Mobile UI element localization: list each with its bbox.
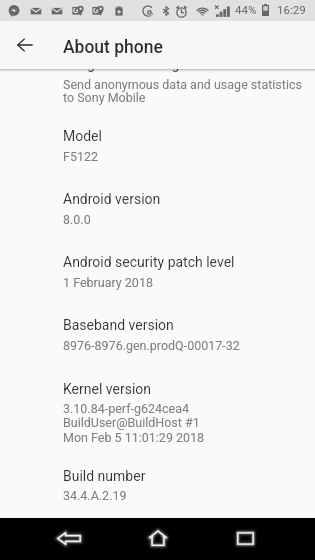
staticText: Send anonymous data and usage statistics bbox=[63, 77, 302, 92]
button[interactable]: Recent apps bbox=[215, 518, 275, 560]
staticText: to Sony Mobile bbox=[63, 90, 146, 105]
staticText: Usage info sharing bbox=[63, 56, 180, 72]
button[interactable] bbox=[0, 367, 315, 439]
staticText: Baseband version bbox=[63, 317, 174, 333]
staticText: Kernel version bbox=[63, 381, 152, 397]
staticText: F5122 bbox=[63, 149, 99, 164]
staticText: 1 February 2018 bbox=[63, 275, 153, 290]
button[interactable] bbox=[0, 454, 315, 497]
button[interactable]: Back bbox=[39, 518, 99, 560]
staticText: Model bbox=[63, 128, 102, 144]
staticText: About phone bbox=[63, 37, 163, 58]
staticText: Android security patch level bbox=[63, 254, 235, 270]
staticText: BuildUser@BuildHost #1 bbox=[63, 415, 200, 430]
button[interactable] bbox=[0, 115, 315, 158]
staticText: 44% bbox=[235, 3, 257, 16]
staticText: 8.0.0 bbox=[63, 212, 91, 227]
staticText: 16:29 bbox=[277, 3, 306, 16]
button[interactable]: Navigate up bbox=[4, 25, 44, 65]
button[interactable] bbox=[0, 241, 315, 284]
staticText: Build number bbox=[63, 468, 146, 484]
staticText: 34.4.A.2.19 bbox=[63, 488, 127, 503]
staticText: Mon Feb 5 11:01:29 2018 bbox=[63, 430, 205, 445]
button[interactable] bbox=[0, 178, 315, 221]
button[interactable]: Home bbox=[128, 518, 188, 560]
button[interactable] bbox=[0, 304, 315, 347]
staticText: 8976-8976.gen.prodQ-00017-32 bbox=[63, 338, 240, 353]
staticText: 3.10.84-perf-g624cea4 bbox=[63, 401, 190, 416]
staticText: Android version bbox=[63, 191, 161, 207]
